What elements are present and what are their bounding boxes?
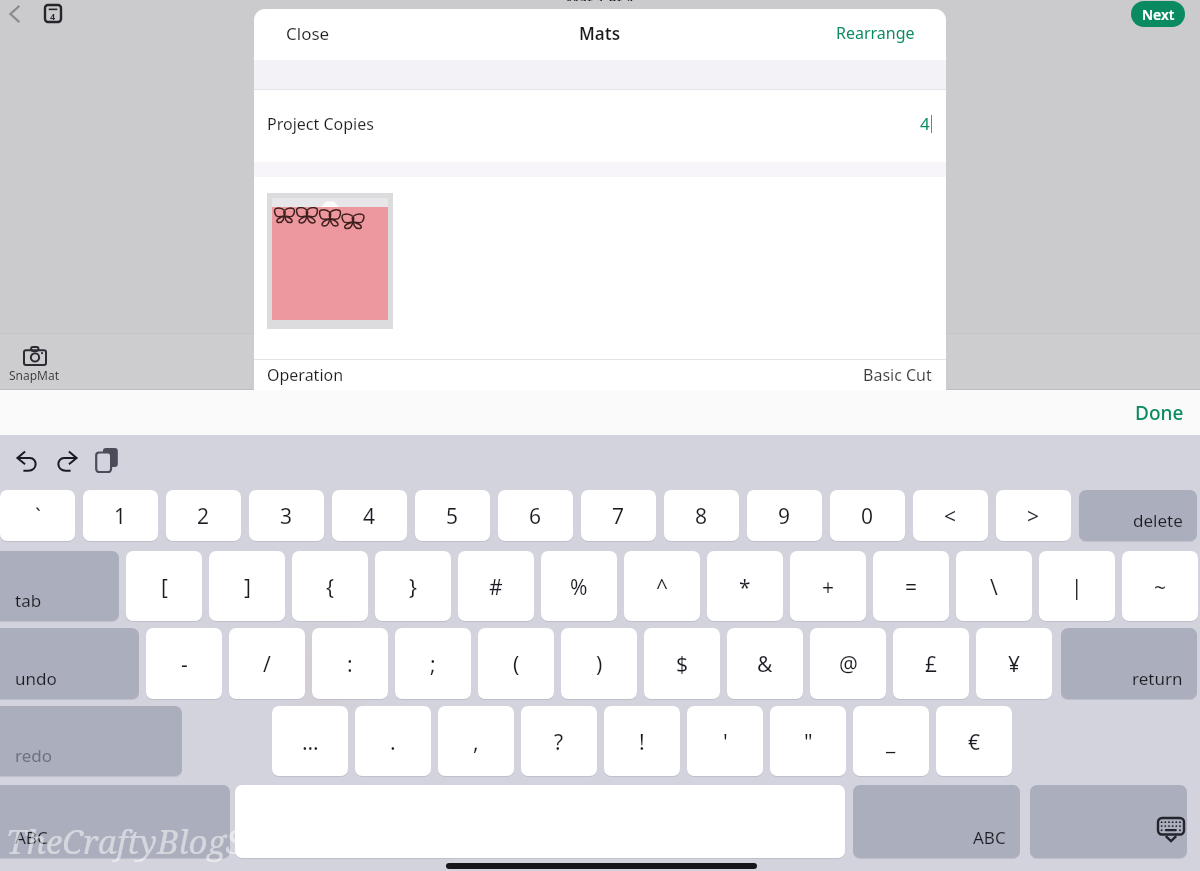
button[interactable]: }: [375, 551, 451, 621]
staticText: SnapMat: [9, 367, 60, 383]
button[interactable]: undo: [0, 628, 139, 699]
button[interactable]: ?: [521, 706, 597, 776]
button[interactable]: €: [936, 706, 1012, 776]
button[interactable]: \: [956, 551, 1032, 621]
staticText: !: [639, 728, 645, 757]
staticText: *: [739, 573, 751, 602]
staticText: Operation: [267, 364, 344, 386]
button[interactable]: `: [0, 490, 75, 541]
staticText: $: [676, 650, 689, 679]
button[interactable]: >: [996, 490, 1071, 541]
staticText: @: [839, 650, 858, 679]
staticText: Close: [286, 22, 330, 45]
button[interactable]: =: [873, 551, 949, 621]
staticText: Basic Cut: [863, 364, 932, 386]
button[interactable]: {: [292, 551, 368, 621]
button[interactable]: (: [478, 628, 554, 699]
button[interactable]: ;: [395, 628, 471, 699]
button[interactable]: ,: [438, 706, 514, 776]
button[interactable]: £: [893, 628, 969, 699]
button[interactable]: SnapMat: [8, 336, 60, 393]
staticText: 9: [778, 502, 791, 531]
button[interactable]: !: [604, 706, 680, 776]
button[interactable]: ): [561, 628, 637, 699]
staticText: >: [1027, 502, 1040, 531]
staticText: 4: [363, 502, 376, 531]
staticText: ,: [473, 728, 479, 757]
button[interactable]: 0: [830, 490, 905, 541]
button[interactable]: [: [126, 551, 202, 621]
staticText: `: [35, 502, 41, 531]
staticText: ^: [656, 573, 669, 602]
button[interactable]: 8: [664, 490, 739, 541]
button[interactable]: Project Copies: [254, 90, 946, 157]
button[interactable]: ": [770, 706, 846, 776]
staticText: .: [390, 728, 396, 757]
staticText: /: [263, 650, 271, 679]
button[interactable]: *: [707, 551, 783, 621]
staticText: redo: [15, 744, 53, 767]
button[interactable]: 3: [249, 490, 324, 541]
button[interactable]: Back: [2, 2, 30, 26]
button[interactable]: /: [229, 628, 305, 699]
staticText: …: [302, 728, 319, 757]
staticText: £: [925, 650, 938, 679]
button[interactable]: Next: [1131, 1, 1185, 27]
staticText: %: [570, 573, 588, 602]
staticText: <: [944, 502, 957, 531]
button[interactable]: Operation: [254, 360, 946, 390]
button[interactable]: 1: [83, 490, 158, 541]
button[interactable]: 7: [581, 490, 656, 541]
button[interactable]: …: [272, 706, 348, 776]
button[interactable]: 5: [415, 490, 490, 541]
staticText: 4: [920, 112, 930, 135]
button[interactable]: <: [913, 490, 988, 541]
button[interactable]: ¥: [976, 628, 1052, 699]
button[interactable]: ]: [209, 551, 285, 621]
button[interactable]: $: [644, 628, 720, 699]
button[interactable]: delete: [1079, 490, 1197, 541]
staticText: 6: [529, 502, 542, 531]
button[interactable]: Rearrange: [832, 18, 919, 48]
staticText: 4: [50, 10, 56, 22]
staticText: ABC: [15, 826, 48, 849]
button[interactable]: 9: [747, 490, 822, 541]
button[interactable]: Paste: [95, 445, 119, 475]
staticText: Project Copies: [267, 113, 374, 135]
button[interactable]: Done: [1129, 394, 1190, 432]
button[interactable]: &: [727, 628, 803, 699]
button[interactable]: 6: [498, 490, 573, 541]
button[interactable]: #: [458, 551, 534, 621]
button[interactable]: _: [853, 706, 929, 776]
button[interactable]: return: [1061, 628, 1197, 699]
button[interactable]: Close: [282, 18, 334, 49]
button[interactable]: ABC: [853, 785, 1020, 858]
button[interactable]: tab: [0, 551, 119, 621]
button[interactable]: .: [355, 706, 431, 776]
staticText: ': [723, 728, 728, 757]
button[interactable]: -: [146, 628, 222, 699]
button[interactable]: ': [687, 706, 763, 776]
staticText: \: [990, 573, 998, 602]
button[interactable]: Undo: [15, 448, 39, 472]
button[interactable]: redo: [0, 706, 182, 776]
button[interactable]: Hide keyboard: [1030, 785, 1187, 858]
button[interactable]: @: [810, 628, 886, 699]
button[interactable]: +: [790, 551, 866, 621]
button[interactable]: %: [541, 551, 617, 621]
button[interactable]: :: [312, 628, 388, 699]
button[interactable]: 4: [332, 490, 407, 541]
button[interactable]: |: [1039, 551, 1115, 621]
button[interactable]: 2: [166, 490, 241, 541]
staticText: 3: [280, 502, 293, 531]
staticText: |: [1071, 573, 1083, 602]
button[interactable]: Redo: [55, 448, 79, 472]
button[interactable]: ~: [1122, 551, 1198, 621]
button[interactable]: [267, 193, 393, 329]
button[interactable]: ABC: [0, 785, 230, 858]
staticText: Next: [1142, 5, 1175, 24]
button[interactable]: ^: [624, 551, 700, 621]
button[interactable]: Project pages: [44, 4, 62, 23]
staticText: 2: [197, 502, 210, 531]
